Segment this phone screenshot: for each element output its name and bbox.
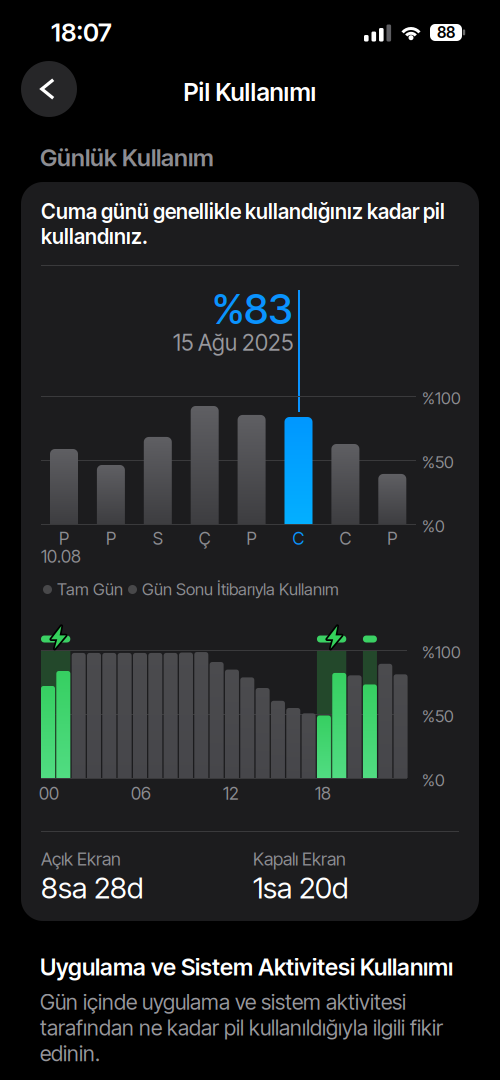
staticText: %83	[212, 284, 293, 334]
staticText: Cuma günü genellikle kullandığınız kadar…	[41, 199, 445, 249]
button[interactable]: Back	[21, 61, 77, 117]
staticText: Pil Kullanımı	[183, 77, 316, 107]
staticText: 8sa 28d	[41, 870, 143, 905]
staticText: 88	[437, 23, 455, 42]
staticText: Açık Ekran	[41, 848, 121, 870]
staticText: 1sa 20d	[253, 870, 348, 905]
staticText: Günlük Kullanım	[40, 143, 214, 172]
staticText: P	[106, 528, 116, 549]
staticText: 10.08	[41, 546, 81, 567]
staticText: 15 Ağu 2025	[173, 329, 293, 356]
staticText: S	[153, 528, 163, 549]
staticText: 18	[315, 783, 331, 804]
staticText: Kapalı Ekran	[253, 848, 346, 870]
staticText: C	[292, 528, 304, 549]
staticText: P	[247, 528, 257, 549]
staticText: 06	[131, 783, 151, 804]
staticText: P	[387, 528, 397, 549]
staticText: %100	[422, 388, 461, 408]
staticText: C	[339, 528, 351, 549]
staticText: Tam Gün	[57, 579, 123, 599]
staticText: 18:07	[51, 17, 112, 48]
staticText: %50	[422, 706, 454, 726]
staticText: %0	[422, 770, 445, 790]
staticText: P	[59, 528, 69, 549]
staticText: %50	[422, 452, 454, 472]
staticText: Uygulama ve Sistem Aktivitesi Kullanımı	[40, 953, 453, 981]
staticText: %0	[422, 516, 445, 536]
staticText: Gün Sonu İtibarıyla Kullanım	[142, 579, 339, 599]
staticText: Ç	[199, 528, 211, 549]
staticText: 00	[39, 783, 59, 804]
staticText: Gün içinde uygulama ve sistem aktivitesi…	[40, 989, 443, 1066]
staticText: 12	[223, 783, 239, 804]
staticText: %100	[422, 642, 461, 662]
